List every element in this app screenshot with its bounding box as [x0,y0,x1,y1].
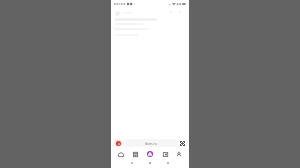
button[interactable]: Tabs [160,149,170,159]
button[interactable]: Home [116,149,126,159]
button[interactable]: Profile [174,149,184,159]
button[interactable]: Scan QR code [178,139,186,147]
button[interactable]: Assistant [145,149,155,159]
staticText: dsm.ru [145,141,157,146]
button[interactable]: dsm.ru [123,139,178,147]
button[interactable]: Browser menu [114,139,122,147]
button[interactable]: Apps [130,149,140,159]
